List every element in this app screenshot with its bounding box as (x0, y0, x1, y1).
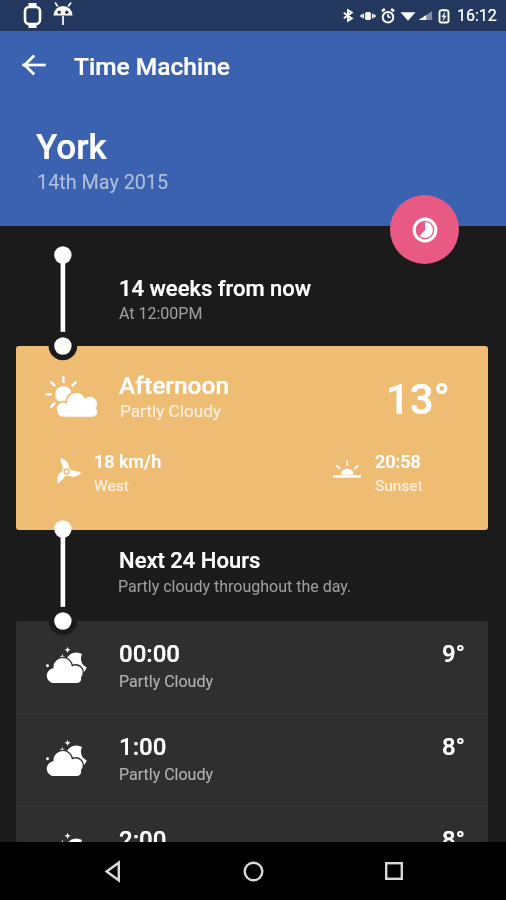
staticText: 2:00 (119, 826, 167, 842)
button[interactable]: 1:00 (16, 714, 488, 806)
staticText: 8° (442, 826, 465, 842)
staticText: 13° (386, 375, 450, 424)
staticText: Afternoon (119, 371, 230, 400)
button[interactable]: Afternoon (16, 346, 488, 530)
staticText: 18 km/h (94, 451, 162, 472)
staticText: 8° (442, 733, 465, 761)
staticText: 16:12 (457, 6, 497, 25)
staticText: 9° (442, 640, 465, 668)
button[interactable]: Time travel (390, 195, 459, 264)
button[interactable]: Back (6, 37, 62, 93)
button[interactable]: Recents (365, 842, 423, 900)
staticText: 00:00 (119, 640, 180, 668)
button[interactable]: 2:00 (16, 807, 488, 842)
staticText: 14th May 2015 (37, 171, 169, 194)
staticText: 14 weeks from now (119, 276, 312, 302)
button[interactable]: 00:00 (16, 621, 488, 713)
staticText: 20:58 (375, 451, 421, 472)
button[interactable]: Back (83, 842, 141, 900)
staticText: 1:00 (119, 733, 167, 761)
staticText: Partly Cloudy (120, 401, 222, 421)
staticText: Partly Cloudy (119, 765, 214, 784)
staticText: York (36, 127, 107, 168)
staticText: At 12:00PM (119, 304, 203, 323)
staticText: Partly Cloudy (119, 672, 214, 691)
staticText: Partly cloudy throughout the day. (118, 577, 352, 596)
staticText: Time Machine (74, 52, 230, 81)
button[interactable]: Home (224, 842, 282, 900)
staticText: Next 24 Hours (119, 548, 261, 574)
staticText: West (94, 477, 129, 495)
staticText: Sunset (375, 477, 423, 495)
